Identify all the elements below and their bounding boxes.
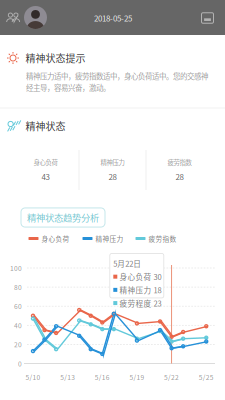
- staticText: 0: [18, 359, 22, 368]
- staticText: 疲劳指数: [167, 158, 191, 167]
- staticText: 身心负荷: [33, 158, 57, 167]
- staticText: 疲劳指数: [148, 234, 176, 243]
- staticText: 28: [108, 171, 116, 182]
- staticText: 28: [175, 171, 183, 182]
- staticText: 5月22日: [113, 258, 141, 269]
- staticText: 60: [14, 301, 22, 311]
- staticText: 精神状态: [25, 119, 65, 133]
- staticText: 40: [14, 320, 22, 330]
- staticText: 精神压力适中，疲劳指数适中，身心负荷适中。您的交感神: [26, 71, 208, 81]
- staticText: 5/16: [95, 372, 110, 382]
- staticText: 身心负荷 30: [119, 271, 161, 282]
- staticText: 经主导，容易兴奋，激动。: [26, 82, 110, 93]
- staticText: 身心负荷: [41, 234, 69, 243]
- staticText: 5/13: [60, 372, 75, 382]
- staticText: 100: [10, 263, 22, 273]
- staticText: 2018-05-25: [94, 12, 132, 24]
- staticText: 疲劳程度 23: [119, 298, 161, 309]
- staticText: 80: [14, 282, 22, 292]
- staticText: 精神压力: [95, 234, 123, 243]
- staticText: 20: [14, 340, 22, 349]
- staticText: 5/10: [25, 372, 40, 382]
- button[interactable]: Profile: [0, 0, 51, 35]
- staticText: 5/22: [164, 372, 179, 382]
- button[interactable]: Calendar: [194, 4, 220, 32]
- staticText: 5/19: [129, 372, 144, 382]
- button[interactable]: 精神状态趋势分析: [21, 208, 105, 227]
- staticText: 精神状态提示: [25, 51, 85, 65]
- staticText: 43: [41, 171, 49, 182]
- staticText: 精神压力 18: [119, 284, 161, 295]
- staticText: 精神压力: [100, 158, 124, 167]
- staticText: 精神状态趋势分析: [27, 211, 99, 224]
- staticText: 5/25: [199, 372, 214, 382]
